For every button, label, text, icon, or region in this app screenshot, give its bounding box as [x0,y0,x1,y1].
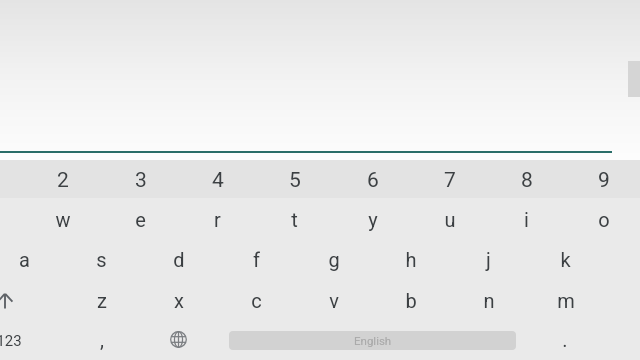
button[interactable]: b [372,280,449,320]
staticText: i [524,208,529,231]
staticText: z [97,289,107,312]
button[interactable]: a [0,239,63,279]
button[interactable]: 6 [334,160,411,200]
button[interactable]: r [179,199,256,239]
button[interactable]: 2 [24,160,101,200]
staticText: b [405,289,417,312]
button[interactable]: n [450,280,527,320]
button[interactable]: k [527,239,604,279]
button[interactable]: y [334,199,411,239]
button[interactable]: e [102,199,179,239]
staticText: e [135,208,146,231]
button[interactable]: d [140,239,217,279]
button[interactable]: 3 [102,160,179,200]
button[interactable]: h [372,239,449,279]
button[interactable]: g [295,239,372,279]
staticText: d [173,248,185,271]
button[interactable]: 9 [565,160,640,200]
staticText: x [174,289,184,312]
button[interactable]: 8 [488,160,565,200]
button[interactable]: Shift [0,281,63,321]
staticText: w [55,208,71,231]
button[interactable]: x [140,280,217,320]
staticText: 5 [289,168,301,193]
button[interactable]: Change keyboard language [140,319,217,359]
staticText: m [557,289,575,312]
staticText: . [562,328,568,351]
staticText: j [486,248,491,271]
staticText: n [483,289,495,312]
button[interactable]: Text input field [0,0,640,153]
button[interactable]: u [411,199,488,239]
button[interactable]: 4 [179,160,256,200]
staticText: f [253,248,260,271]
button[interactable]: m [527,280,604,320]
staticText: t [291,208,298,231]
staticText: 9 [598,168,610,193]
staticText: 7 [444,168,456,193]
staticText: 3 [135,168,147,193]
staticText: o [598,208,610,231]
button[interactable]: , [63,319,140,359]
button[interactable]: t [256,199,333,239]
staticText: 8 [521,168,533,193]
staticText: English [354,334,392,347]
staticText: c [251,289,262,312]
staticText: 6 [367,168,379,193]
staticText: s [96,248,107,271]
staticText: h [405,248,417,271]
staticText: g [328,248,340,271]
staticText: y [368,208,378,231]
button[interactable]: c [218,280,295,320]
button[interactable]: j [450,239,527,279]
button[interactable]: o [565,199,640,239]
button[interactable]: w [24,199,101,239]
staticText: , [100,328,104,351]
button[interactable]: . [526,319,603,359]
staticText: 2 [57,168,69,193]
button[interactable]: 7 [411,160,488,200]
staticText: r [214,208,221,231]
staticText: ?123 [0,332,22,350]
button[interactable]: English [229,331,516,350]
button[interactable]: z [63,280,140,320]
button[interactable]: ?123 [0,321,63,360]
staticText: u [444,208,456,231]
button[interactable]: v [295,280,372,320]
button[interactable]: f [218,239,295,279]
button[interactable]: i [488,199,565,239]
button[interactable]: 5 [256,160,333,200]
staticText: k [560,248,571,271]
staticText: v [329,289,339,312]
button[interactable]: s [63,239,140,279]
staticText: 4 [212,168,224,193]
staticText: a [19,248,30,271]
